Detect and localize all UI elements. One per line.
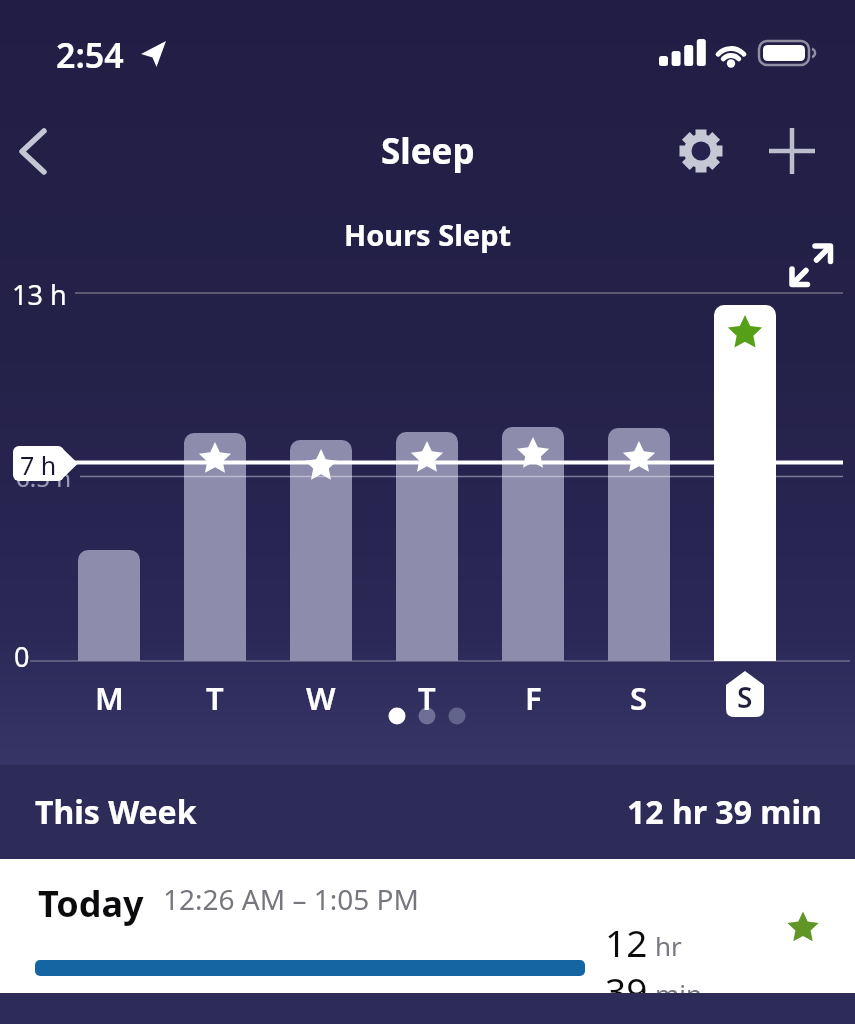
staticText: 13 h	[12, 276, 67, 313]
staticText: M	[95, 677, 124, 719]
staticText: F	[525, 677, 542, 719]
staticText: This Week	[35, 790, 197, 834]
staticText: T	[206, 677, 224, 719]
staticText: 12:26 AM – 1:05 PM	[163, 880, 419, 918]
button[interactable]	[763, 122, 821, 180]
staticText: min	[655, 976, 703, 1011]
button[interactable]	[8, 118, 64, 184]
staticText: 6.5 h	[16, 461, 71, 494]
button[interactable]: This Week	[0, 765, 855, 859]
staticText: 7 h	[20, 448, 57, 482]
staticText: Today	[38, 879, 144, 928]
staticText: W	[306, 677, 336, 719]
staticText: 12	[605, 917, 648, 967]
button[interactable]: Today	[0, 859, 855, 993]
staticText: hr	[655, 928, 682, 963]
staticText: S	[630, 677, 648, 719]
button[interactable]	[672, 122, 730, 180]
staticText: Hours Slept	[344, 215, 512, 254]
staticText: Sleep	[381, 127, 475, 175]
button[interactable]	[780, 234, 842, 296]
staticText: 12 hr 39 min	[627, 790, 822, 834]
staticText: 39	[605, 965, 648, 1015]
staticText: 0	[14, 638, 30, 675]
staticText: T	[418, 677, 436, 719]
staticText: S	[737, 678, 753, 716]
staticText: 2:54	[56, 32, 124, 78]
